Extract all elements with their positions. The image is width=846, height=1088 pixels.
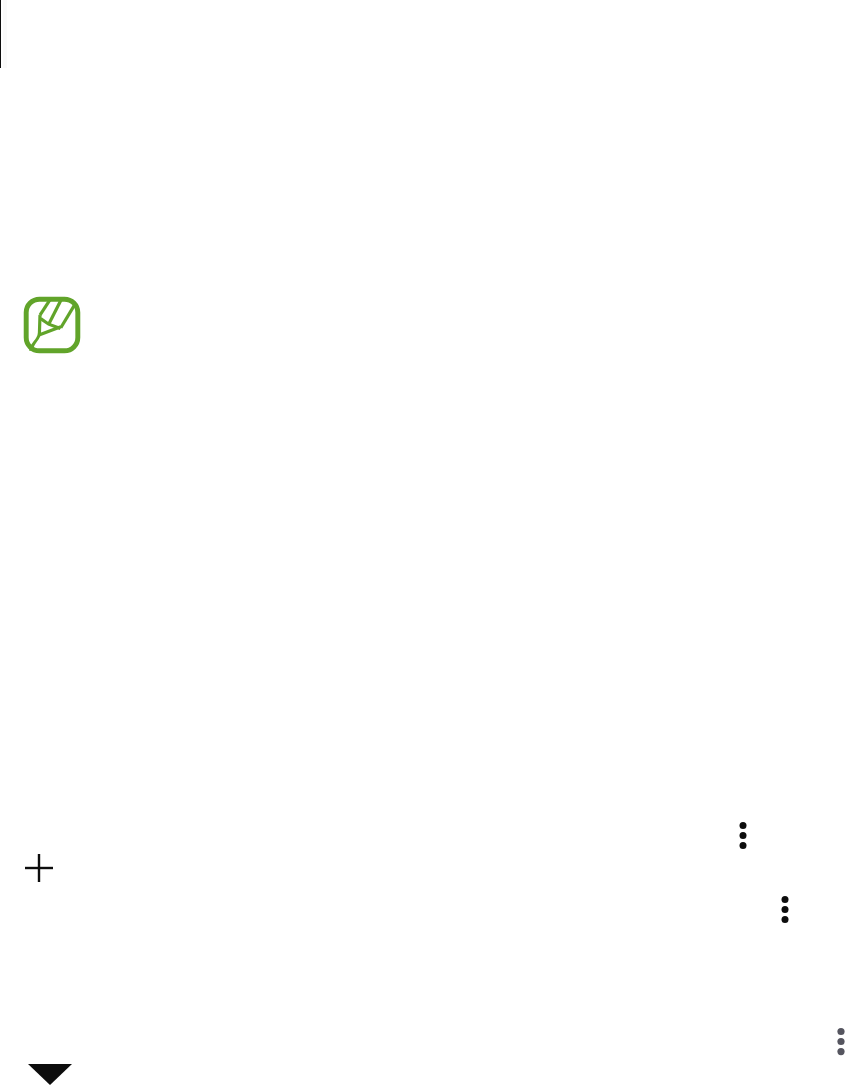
button[interactable]: More options (833, 1026, 846, 1058)
button[interactable]: More options (735, 820, 751, 852)
button[interactable]: More options (777, 894, 793, 926)
button[interactable]: Add (25, 854, 53, 882)
button[interactable]: S Note (23, 296, 81, 354)
button[interactable]: Expand (28, 1064, 72, 1085)
